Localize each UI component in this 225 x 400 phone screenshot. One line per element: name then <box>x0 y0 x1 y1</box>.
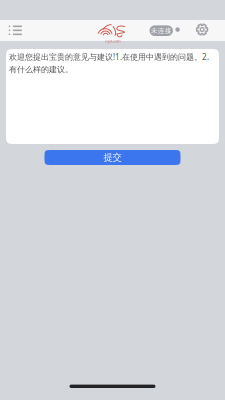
button[interactable]: 设置 <box>192 19 212 40</box>
button[interactable]: 未连接 <box>149 25 173 36</box>
staticText: rijst.com <box>105 38 121 44</box>
staticText: 提交 <box>103 152 121 163</box>
button[interactable]: 提交 <box>44 150 180 165</box>
staticText: 未连接 <box>151 27 172 35</box>
button[interactable]: 菜单 <box>3 20 28 40</box>
staticText: 欢迎您提出宝贵的意见与建议!1.在使用中遇到的问题。2.有什么样的建议。 <box>9 51 209 74</box>
